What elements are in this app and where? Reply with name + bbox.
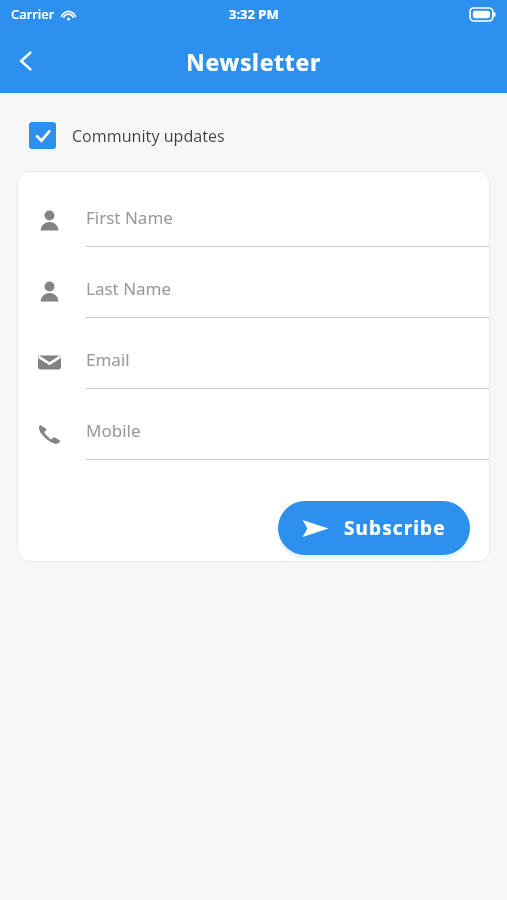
staticText: Mobile bbox=[86, 419, 141, 442]
button[interactable]: First Name bbox=[17, 191, 490, 262]
button[interactable]: Email bbox=[17, 333, 490, 404]
staticText: Last Name bbox=[86, 277, 172, 300]
staticText: 3:32 PM bbox=[229, 5, 279, 23]
button[interactable]: Last Name bbox=[17, 262, 490, 333]
button[interactable]: Back bbox=[0, 35, 52, 87]
staticText: Email bbox=[86, 348, 130, 371]
button[interactable]: Community updates bbox=[29, 122, 225, 149]
button[interactable]: Mobile bbox=[17, 404, 490, 475]
staticText: Community updates bbox=[72, 125, 225, 147]
staticText: Subscribe bbox=[344, 515, 446, 541]
staticText: First Name bbox=[86, 206, 173, 229]
button[interactable]: Subscribe bbox=[278, 501, 470, 555]
staticText: Newsletter bbox=[186, 46, 321, 77]
staticText: Carrier bbox=[11, 5, 55, 23]
